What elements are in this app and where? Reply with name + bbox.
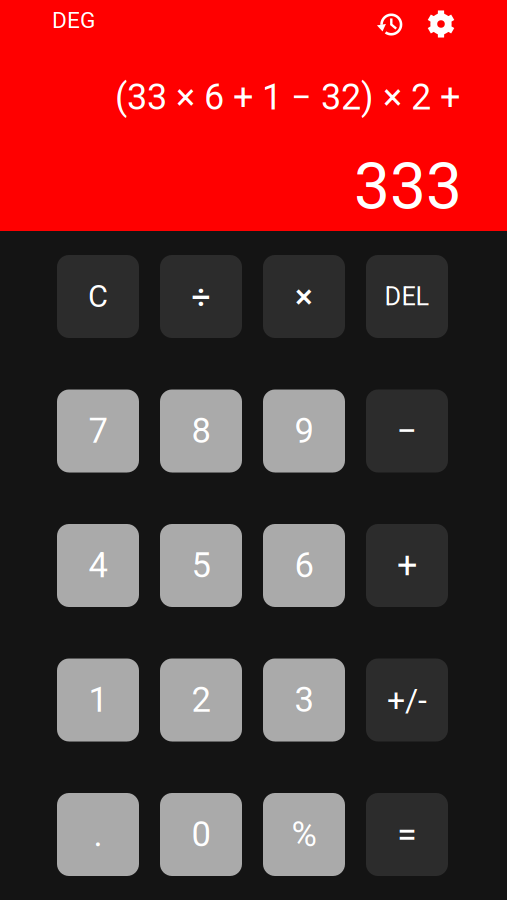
- staticText: ÷: [191, 277, 210, 316]
- staticText: 7: [88, 411, 107, 451]
- staticText: C: [88, 278, 108, 314]
- button[interactable]: 8: [160, 389, 242, 472]
- button[interactable]: 0: [160, 793, 242, 876]
- button[interactable]: %: [263, 793, 345, 876]
- button[interactable]: DEL: [366, 255, 448, 338]
- button[interactable]: =: [366, 793, 448, 876]
- button[interactable]: History: [377, 11, 403, 37]
- staticText: 0: [191, 814, 210, 855]
- staticText: DEL: [384, 282, 429, 311]
- staticText: 5: [191, 545, 210, 586]
- button[interactable]: 1: [57, 658, 139, 741]
- button[interactable]: 9: [263, 389, 345, 472]
- staticText: =: [397, 813, 417, 856]
- staticText: 3: [294, 680, 313, 720]
- staticText: (33 × 6 + 1 − 32) × 2 +: [115, 76, 460, 118]
- staticText: .: [93, 814, 102, 855]
- staticText: 333: [354, 149, 462, 224]
- staticText: %: [291, 814, 316, 855]
- button[interactable]: ×: [263, 255, 345, 338]
- staticText: 1: [88, 680, 107, 720]
- button[interactable]: 6: [263, 524, 345, 607]
- button[interactable]: C: [57, 255, 139, 338]
- button[interactable]: 4: [57, 524, 139, 607]
- staticText: 4: [88, 545, 107, 586]
- button[interactable]: Settings: [427, 10, 455, 38]
- button[interactable]: 7: [57, 389, 139, 472]
- button[interactable]: 3: [263, 658, 345, 741]
- button[interactable]: −: [366, 389, 448, 472]
- staticText: −: [396, 410, 417, 452]
- button[interactable]: DEG: [52, 7, 95, 34]
- staticText: 6: [294, 545, 313, 586]
- staticText: 2: [191, 680, 210, 720]
- staticText: +: [397, 544, 417, 587]
- staticText: +/-: [387, 681, 427, 719]
- button[interactable]: .: [57, 793, 139, 876]
- button[interactable]: 2: [160, 658, 242, 741]
- button[interactable]: +/-: [366, 658, 448, 741]
- staticText: DEG: [52, 7, 95, 34]
- staticText: ×: [295, 277, 313, 316]
- staticText: 8: [191, 411, 210, 451]
- staticText: 9: [294, 411, 313, 451]
- button[interactable]: +: [366, 524, 448, 607]
- button[interactable]: 5: [160, 524, 242, 607]
- button[interactable]: ÷: [160, 255, 242, 338]
